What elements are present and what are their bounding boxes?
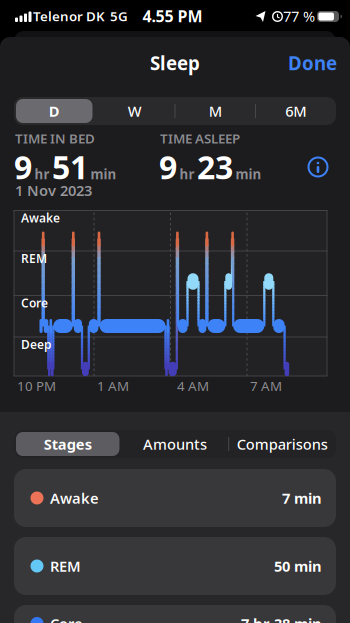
staticText: min	[90, 165, 116, 183]
staticText: Telenor DK	[33, 7, 105, 25]
staticText: Core	[50, 614, 83, 623]
staticText: 4.55 PM	[142, 5, 202, 27]
staticText: D	[49, 101, 60, 121]
staticText: 1 AM	[97, 377, 129, 395]
staticText: hr	[34, 165, 49, 183]
button[interactable]: Amounts	[121, 430, 229, 458]
staticText: 9	[14, 145, 32, 188]
staticText: Amounts	[143, 434, 207, 454]
staticText: 4 AM	[177, 377, 209, 395]
staticText: TIME IN BED	[15, 129, 95, 147]
staticText: 23	[197, 145, 233, 188]
staticText: 77 %	[283, 6, 315, 26]
staticText: 7 min	[282, 488, 322, 508]
staticText: 6M	[285, 101, 306, 121]
staticText: 7 hr 38 min	[241, 614, 322, 623]
staticText: 50 min	[274, 556, 322, 576]
staticText: M	[209, 101, 222, 121]
staticText: 51	[52, 145, 88, 188]
staticText: Awake	[21, 210, 60, 226]
button[interactable]: M	[175, 97, 255, 125]
staticText: 5G	[110, 7, 128, 25]
button[interactable]: W	[94, 97, 175, 125]
staticText: Done	[288, 51, 337, 75]
button[interactable]: D	[14, 97, 94, 125]
button[interactable]: Awake	[14, 469, 336, 527]
staticText: Core	[21, 295, 48, 311]
staticText: 7 AM	[250, 377, 282, 395]
staticText: Awake	[50, 488, 99, 508]
staticText: hr	[179, 165, 194, 183]
staticText: Deep	[21, 336, 52, 352]
staticText: TIME ASLEEP	[160, 129, 240, 147]
staticText: Stages	[44, 434, 92, 454]
button[interactable]: Comparisons	[229, 430, 336, 458]
staticText: Comparisons	[237, 434, 328, 454]
staticText: W	[128, 101, 142, 121]
staticText: 1 Nov 2023	[15, 180, 92, 200]
button[interactable]: REM	[14, 537, 336, 595]
button[interactable]: 6M	[255, 97, 336, 125]
staticText: 9	[159, 145, 177, 188]
button[interactable]: Done	[288, 51, 337, 75]
staticText: Sleep	[150, 51, 200, 75]
staticText: min	[235, 165, 261, 183]
staticText: 10 PM	[17, 377, 56, 395]
button[interactable]: Core	[14, 605, 336, 623]
staticText: REM	[21, 250, 47, 266]
button[interactable]: Stages	[14, 430, 121, 458]
staticText: REM	[50, 556, 81, 576]
button[interactable]: About Sleep Stages	[308, 157, 327, 176]
